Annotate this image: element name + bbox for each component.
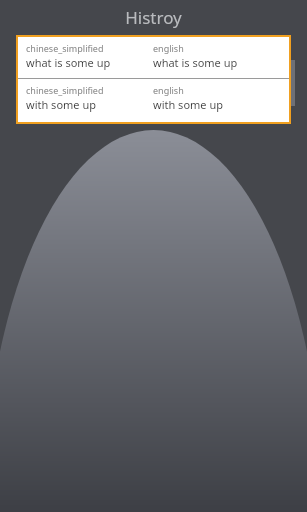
staticText: chinese_simplified	[26, 84, 104, 96]
staticText: with some up	[153, 97, 223, 112]
button[interactable]: chinese_simplified	[18, 37, 289, 78]
staticText: what is some up	[153, 55, 238, 70]
staticText: what is some up	[26, 55, 111, 70]
staticText: chinese_simplified	[26, 42, 104, 54]
staticText: english	[153, 42, 184, 54]
staticText: Histroy	[125, 6, 182, 29]
staticText: with some up	[26, 97, 96, 112]
button[interactable]: chinese_simplified	[18, 79, 289, 122]
staticText: english	[153, 84, 184, 96]
